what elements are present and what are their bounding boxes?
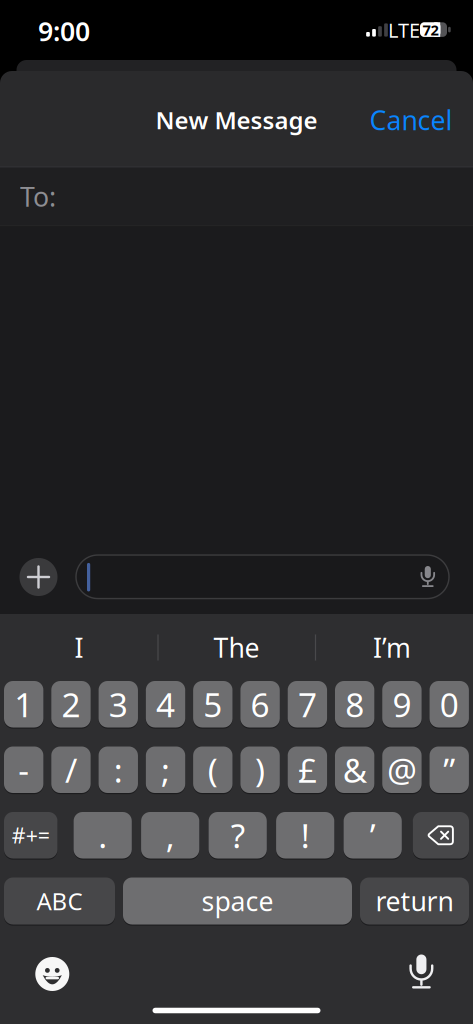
button[interactable]: ! bbox=[276, 812, 334, 858]
staticText: . bbox=[98, 813, 107, 857]
button[interactable] bbox=[399, 949, 443, 993]
staticText: I’m bbox=[373, 630, 411, 665]
staticText: 4 bbox=[156, 682, 175, 726]
staticText: #+= bbox=[12, 821, 50, 849]
button[interactable] bbox=[413, 561, 443, 591]
staticText: 5 bbox=[203, 682, 222, 726]
button[interactable]: ’ bbox=[344, 812, 402, 858]
staticText: & bbox=[343, 748, 367, 792]
staticText: 6 bbox=[251, 682, 270, 726]
staticText: @ bbox=[387, 748, 417, 792]
button[interactable]: 8 bbox=[335, 681, 374, 727]
button[interactable]: 7 bbox=[288, 681, 327, 727]
staticText: 7 bbox=[298, 682, 317, 726]
staticText: ” bbox=[443, 748, 455, 792]
staticText: ( bbox=[208, 748, 218, 792]
button[interactable]: 1 bbox=[4, 681, 43, 727]
staticText: 8 bbox=[345, 682, 364, 726]
button[interactable] bbox=[76, 555, 449, 598]
staticText: Cancel bbox=[369, 102, 452, 138]
staticText: return bbox=[375, 883, 453, 919]
button[interactable]: Cancel bbox=[342, 94, 452, 146]
staticText: ) bbox=[255, 748, 265, 792]
button[interactable]: To: bbox=[0, 167, 473, 225]
button[interactable]: & bbox=[335, 746, 374, 793]
button[interactable]: / bbox=[51, 746, 91, 793]
button[interactable]: 0 bbox=[429, 681, 469, 727]
staticText: 9 bbox=[392, 682, 411, 726]
staticText: 1 bbox=[14, 682, 33, 726]
button[interactable]: I’m bbox=[317, 622, 467, 672]
button[interactable] bbox=[413, 812, 469, 858]
button[interactable]: 4 bbox=[146, 681, 185, 727]
button[interactable]: 9 bbox=[382, 681, 422, 727]
staticText: 9:00 bbox=[38, 13, 90, 49]
button[interactable]: I bbox=[4, 622, 154, 672]
button[interactable]: @ bbox=[382, 746, 422, 793]
staticText: LTE bbox=[388, 17, 420, 43]
button[interactable]: ; bbox=[146, 746, 185, 793]
staticText: I bbox=[74, 630, 83, 665]
button[interactable]: 3 bbox=[99, 681, 138, 727]
button[interactable]: return bbox=[360, 877, 469, 924]
button[interactable]: , bbox=[141, 812, 199, 858]
staticText: / bbox=[65, 748, 77, 792]
staticText: 3 bbox=[109, 682, 128, 726]
staticText: ’ bbox=[370, 813, 376, 857]
button[interactable]: ? bbox=[209, 812, 267, 858]
button[interactable]: 5 bbox=[193, 681, 232, 727]
staticText: £ bbox=[298, 748, 317, 792]
staticText: ; bbox=[161, 748, 170, 792]
button[interactable]: ) bbox=[240, 746, 280, 793]
button[interactable]: £ bbox=[288, 746, 327, 793]
button[interactable]: The bbox=[161, 622, 311, 672]
button[interactable]: #+= bbox=[4, 812, 57, 858]
button[interactable]: 2 bbox=[51, 681, 91, 727]
staticText: ABC bbox=[36, 885, 82, 917]
staticText: 2 bbox=[61, 682, 80, 726]
staticText: New Message bbox=[155, 104, 317, 136]
button[interactable]: - bbox=[4, 746, 43, 793]
button[interactable]: ABC bbox=[4, 877, 115, 924]
button[interactable] bbox=[19, 558, 57, 596]
staticText: The bbox=[213, 630, 259, 665]
staticText: space bbox=[201, 883, 273, 919]
button[interactable]: . bbox=[74, 812, 132, 858]
staticText: ? bbox=[231, 813, 245, 857]
button[interactable]: space bbox=[123, 877, 352, 924]
staticText: 72 bbox=[422, 20, 438, 39]
button[interactable]: : bbox=[99, 746, 138, 793]
button[interactable]: ” bbox=[429, 746, 469, 793]
staticText: To: bbox=[20, 179, 56, 214]
button[interactable] bbox=[30, 952, 74, 996]
staticText: , bbox=[166, 813, 175, 857]
button[interactable]: 6 bbox=[240, 681, 280, 727]
staticText: : bbox=[114, 748, 123, 792]
staticText: 0 bbox=[440, 682, 459, 726]
staticText: - bbox=[18, 748, 29, 792]
staticText: ! bbox=[301, 813, 310, 857]
button[interactable]: ( bbox=[193, 746, 232, 793]
